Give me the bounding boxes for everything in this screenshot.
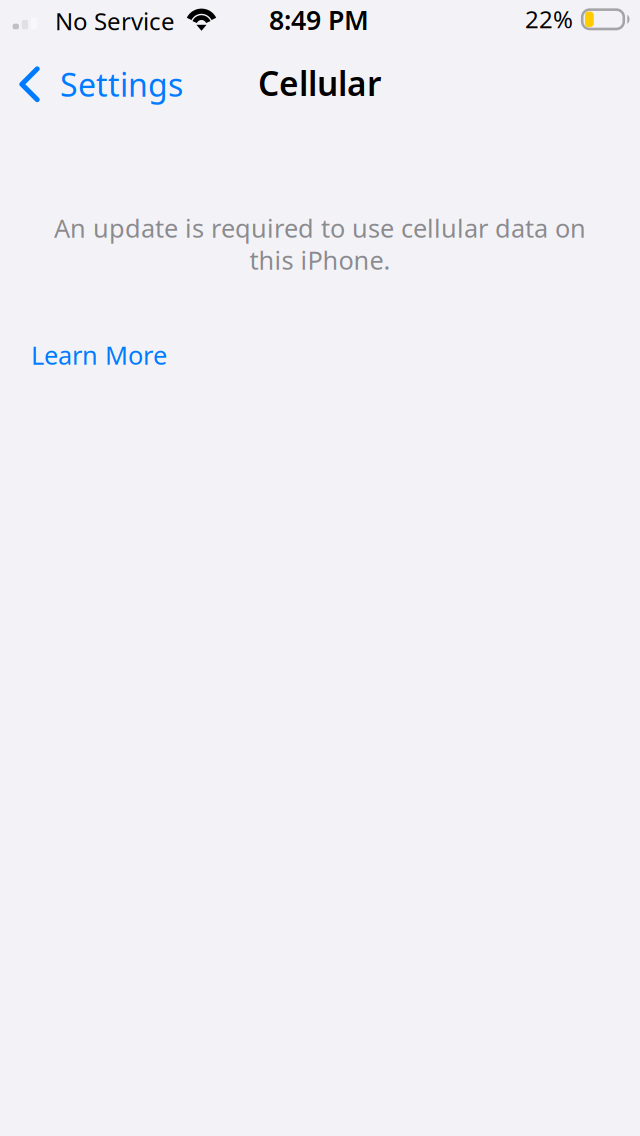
staticText: Settings	[60, 63, 183, 105]
staticText: Cellular	[258, 61, 381, 105]
staticText: An update is required to use cellular da…	[54, 211, 586, 245]
button[interactable]: Back to Settings	[0, 53, 197, 115]
staticText: No Service	[55, 5, 175, 37]
staticText: Learn More	[31, 338, 167, 372]
staticText: 8:49 PM	[269, 2, 369, 37]
staticText: this iPhone.	[249, 243, 390, 277]
button[interactable]: Learn More	[0, 326, 187, 384]
staticText: 22%	[525, 3, 573, 35]
